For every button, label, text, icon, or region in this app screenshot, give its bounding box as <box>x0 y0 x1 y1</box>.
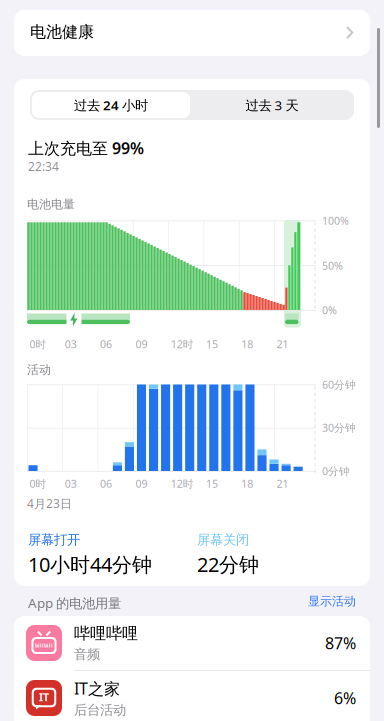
staticText: 10小时44分钟 <box>28 551 152 578</box>
staticText: 22分钟 <box>197 551 259 578</box>
button[interactable]: 电池健康 <box>14 10 370 56</box>
staticText: IT <box>39 690 49 704</box>
staticText: bilibili <box>35 642 53 649</box>
staticText: 4月23日 <box>27 495 72 511</box>
staticText: 30分钟 <box>322 420 356 435</box>
staticText: 15 <box>206 476 218 491</box>
staticText: 电池健康 <box>30 22 94 42</box>
staticText: 87% <box>325 632 356 654</box>
staticText: 显示活动 <box>308 594 356 609</box>
staticText: 09 <box>135 337 147 351</box>
staticText: 50% <box>322 258 343 273</box>
staticText: 06 <box>100 337 112 351</box>
staticText: App 的电池用量 <box>28 594 121 612</box>
button[interactable]: 显示活动 <box>256 594 356 609</box>
staticText: 音频 <box>74 646 100 662</box>
staticText: 0% <box>322 303 337 317</box>
button[interactable]: 过去 24 小时 <box>32 92 190 118</box>
staticText: 0时 <box>29 337 46 351</box>
button[interactable]: 过去 3 天 <box>192 90 352 120</box>
staticText: 06 <box>100 476 112 491</box>
staticText: 过去 3 天 <box>245 96 298 114</box>
staticText: 后台活动 <box>74 702 126 718</box>
staticText: 60分钟 <box>322 377 356 392</box>
staticText: 21 <box>277 476 289 491</box>
staticText: 09 <box>135 476 147 491</box>
staticText: 上次充电至 99% <box>28 137 144 159</box>
staticText: 哔哩哔哩 <box>74 623 138 643</box>
staticText: 电池电量 <box>27 197 75 212</box>
staticText: 18 <box>241 337 253 351</box>
button[interactable]: IT <box>26 671 356 721</box>
staticText: 21 <box>277 337 289 351</box>
staticText: 过去 24 小时 <box>74 96 148 114</box>
staticText: 18 <box>241 476 253 491</box>
staticText: 屏幕打开 <box>28 531 80 548</box>
staticText: 12时 <box>171 337 194 351</box>
staticText: 03 <box>65 337 77 351</box>
staticText: 15 <box>206 337 218 351</box>
staticText: 22:34 <box>28 158 59 174</box>
staticText: 活动 <box>27 362 51 377</box>
staticText: 03 <box>65 476 77 491</box>
staticText: 6% <box>334 687 356 709</box>
button[interactable]: bilibili <box>26 616 356 670</box>
staticText: 0分钟 <box>322 464 350 478</box>
staticText: 屏幕关闭 <box>197 531 249 548</box>
staticText: 12时 <box>171 476 194 491</box>
staticText: 100% <box>322 213 349 228</box>
staticText: IT之家 <box>74 678 120 699</box>
staticText: 0时 <box>29 476 46 491</box>
